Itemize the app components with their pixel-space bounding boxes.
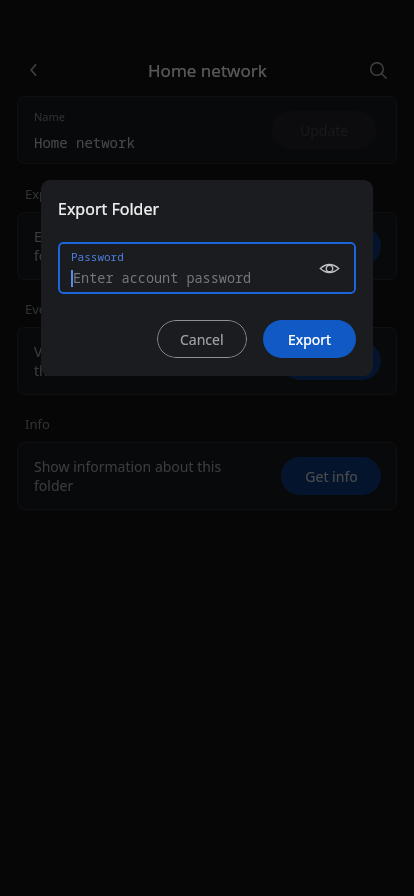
staticText: Get info [305,467,358,486]
staticText: Home network [34,133,135,152]
staticText: Enter account password [73,269,252,287]
staticText: folder [34,246,74,265]
staticText: folder [34,476,74,495]
staticText: Export [25,185,66,203]
button[interactable]: Search [358,50,398,90]
staticText: Name [34,109,66,124]
button[interactable]: Export [263,320,356,358]
button[interactable]: Show password [312,251,346,285]
staticText: Export [288,330,332,349]
staticText: Events [309,352,353,371]
staticText: View events for [34,342,135,361]
staticText: Export [309,237,353,256]
staticText: Show information about this [34,457,222,476]
staticText: this folder [34,361,101,380]
staticText: Cancel [180,330,224,349]
button[interactable]: Events [281,342,381,380]
staticText: Export Folder [58,198,160,220]
button[interactable]: Cancel [157,320,247,358]
staticText: Export this [34,227,105,246]
staticText: Password [71,249,124,264]
button[interactable]: Back [14,50,54,90]
button[interactable]: Export [281,227,381,265]
staticText: Info [25,415,50,433]
staticText: Update [300,121,349,140]
staticText: Home network [148,59,267,82]
staticText: Events [25,300,66,318]
button[interactable]: Get info [281,457,381,495]
button[interactable]: Password [58,242,356,294]
